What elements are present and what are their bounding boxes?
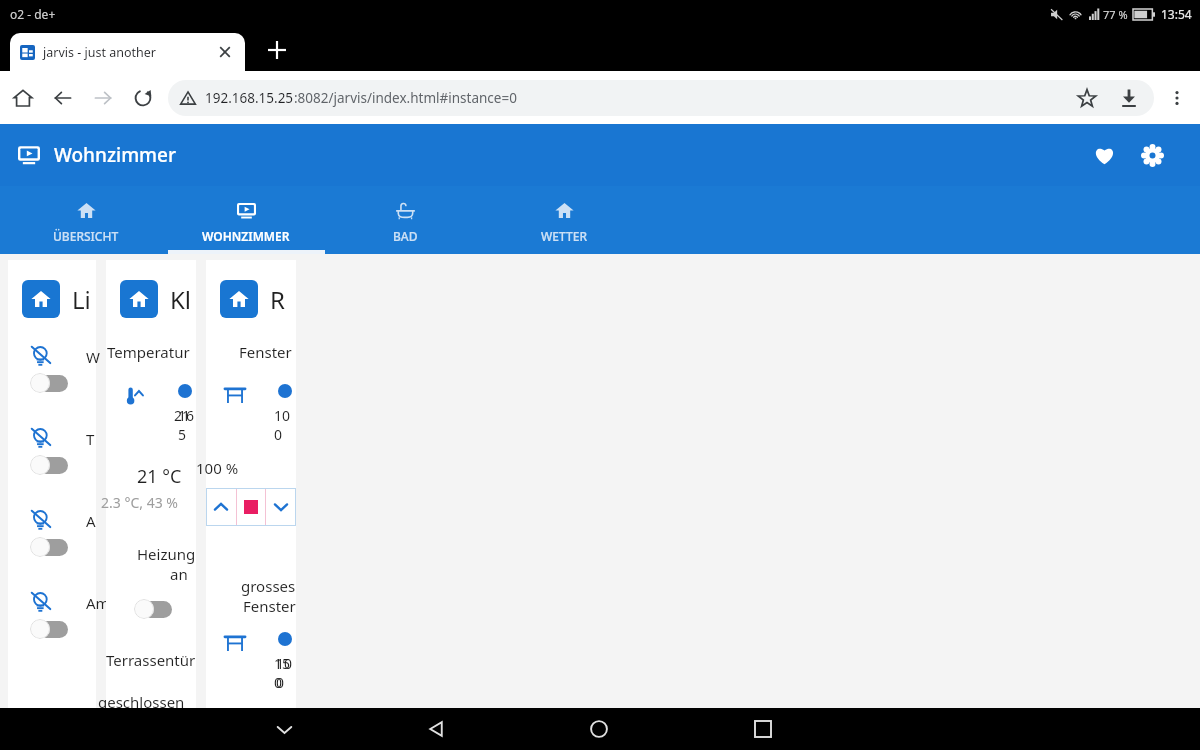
staticText: Fenster — [239, 342, 292, 362]
staticText: 165 — [178, 406, 200, 444]
staticText: ÜBERSICHT — [53, 228, 119, 244]
button[interactable]: Back — [416, 709, 456, 749]
staticText: BAD — [393, 228, 418, 244]
staticText: Wohnzimmer — [54, 142, 177, 168]
staticText: an — [170, 564, 188, 584]
staticText: 21 °C — [137, 464, 182, 489]
button[interactable] — [134, 598, 172, 620]
staticText: o2 - de+ — [10, 6, 56, 22]
staticText: 100 — [274, 406, 296, 444]
staticText: 77 % — [1103, 7, 1128, 22]
staticText: Terrassentür — [106, 650, 196, 670]
button[interactable]: Recent apps — [743, 709, 783, 749]
button[interactable]: jarvis - just another remarkable vis — [10, 33, 245, 71]
staticText: 100 % — [196, 706, 239, 714]
button[interactable]: Rollo — [206, 260, 296, 714]
button[interactable]: ÜBERSICHT — [7, 186, 165, 254]
staticText: Rollo — [270, 283, 296, 316]
button[interactable]: 192.168.15.25 — [168, 80, 1154, 116]
staticText: 21 — [174, 406, 191, 425]
button[interactable]: Favorites — [1084, 135, 1124, 175]
button[interactable]: Hide keyboard — [264, 709, 304, 749]
button[interactable]: Settings — [1132, 135, 1172, 175]
button[interactable]: Stop blind — [236, 488, 266, 526]
button[interactable]: Reload — [130, 85, 156, 111]
staticText: Wohnzimmer — [86, 347, 96, 367]
button[interactable]: Ambiente — [8, 589, 96, 671]
button[interactable]: Bookmark — [1074, 85, 1100, 111]
button[interactable] — [30, 454, 68, 476]
button[interactable]: Arbeitsecke — [8, 507, 96, 589]
staticText: 2.3 °C, 43 % — [101, 493, 178, 512]
button[interactable]: Home — [579, 709, 619, 749]
button[interactable]: WOHNZIMMER — [167, 186, 325, 254]
button[interactable]: Open blind — [206, 488, 236, 526]
button[interactable]: Close blind — [266, 488, 296, 526]
staticText: Arbeitsecke — [86, 511, 96, 531]
staticText: Ambiente — [86, 593, 96, 613]
button[interactable]: Forward — [90, 85, 116, 111]
button[interactable] — [30, 372, 68, 394]
button[interactable]: Tischlampe — [8, 425, 96, 507]
staticText: 150 — [274, 654, 296, 692]
staticText: grosses — [241, 576, 296, 596]
button[interactable]: Home — [10, 85, 36, 111]
staticText: WETTER — [541, 228, 587, 244]
staticText: Heizung — [137, 544, 196, 564]
button[interactable]: Back — [50, 85, 76, 111]
button[interactable]: New tab — [262, 35, 292, 65]
button[interactable]: Klima — [106, 260, 196, 714]
staticText: 13:54 — [1161, 6, 1192, 22]
button[interactable]: More options — [1160, 81, 1194, 115]
button[interactable]: Download — [1116, 85, 1142, 111]
staticText: Licht — [72, 283, 96, 316]
button[interactable]: Wohnzimmer — [8, 343, 96, 425]
button[interactable] — [30, 618, 68, 640]
staticText: Klima — [170, 283, 196, 316]
staticText: jarvis - just another remarkable vis — [43, 44, 211, 61]
button[interactable] — [30, 536, 68, 558]
staticText: 100 — [276, 654, 298, 692]
button[interactable]: Licht — [8, 260, 96, 714]
staticText: geschlossen — [98, 692, 185, 712]
staticText: Fenster — [243, 596, 296, 616]
button[interactable]: WETTER — [485, 186, 643, 254]
staticText: Tischlampe — [86, 429, 96, 449]
staticText: WOHNZIMMER — [202, 228, 290, 244]
staticText: 100 % — [196, 458, 239, 478]
button[interactable]: BAD — [326, 186, 484, 254]
button[interactable]: Close tab — [215, 42, 235, 62]
staticText: :8082/jarvis/index.html#instance=0 — [294, 89, 517, 107]
staticText: 192.168.15.25 — [205, 89, 294, 107]
staticText: Temperatur — [107, 342, 190, 362]
